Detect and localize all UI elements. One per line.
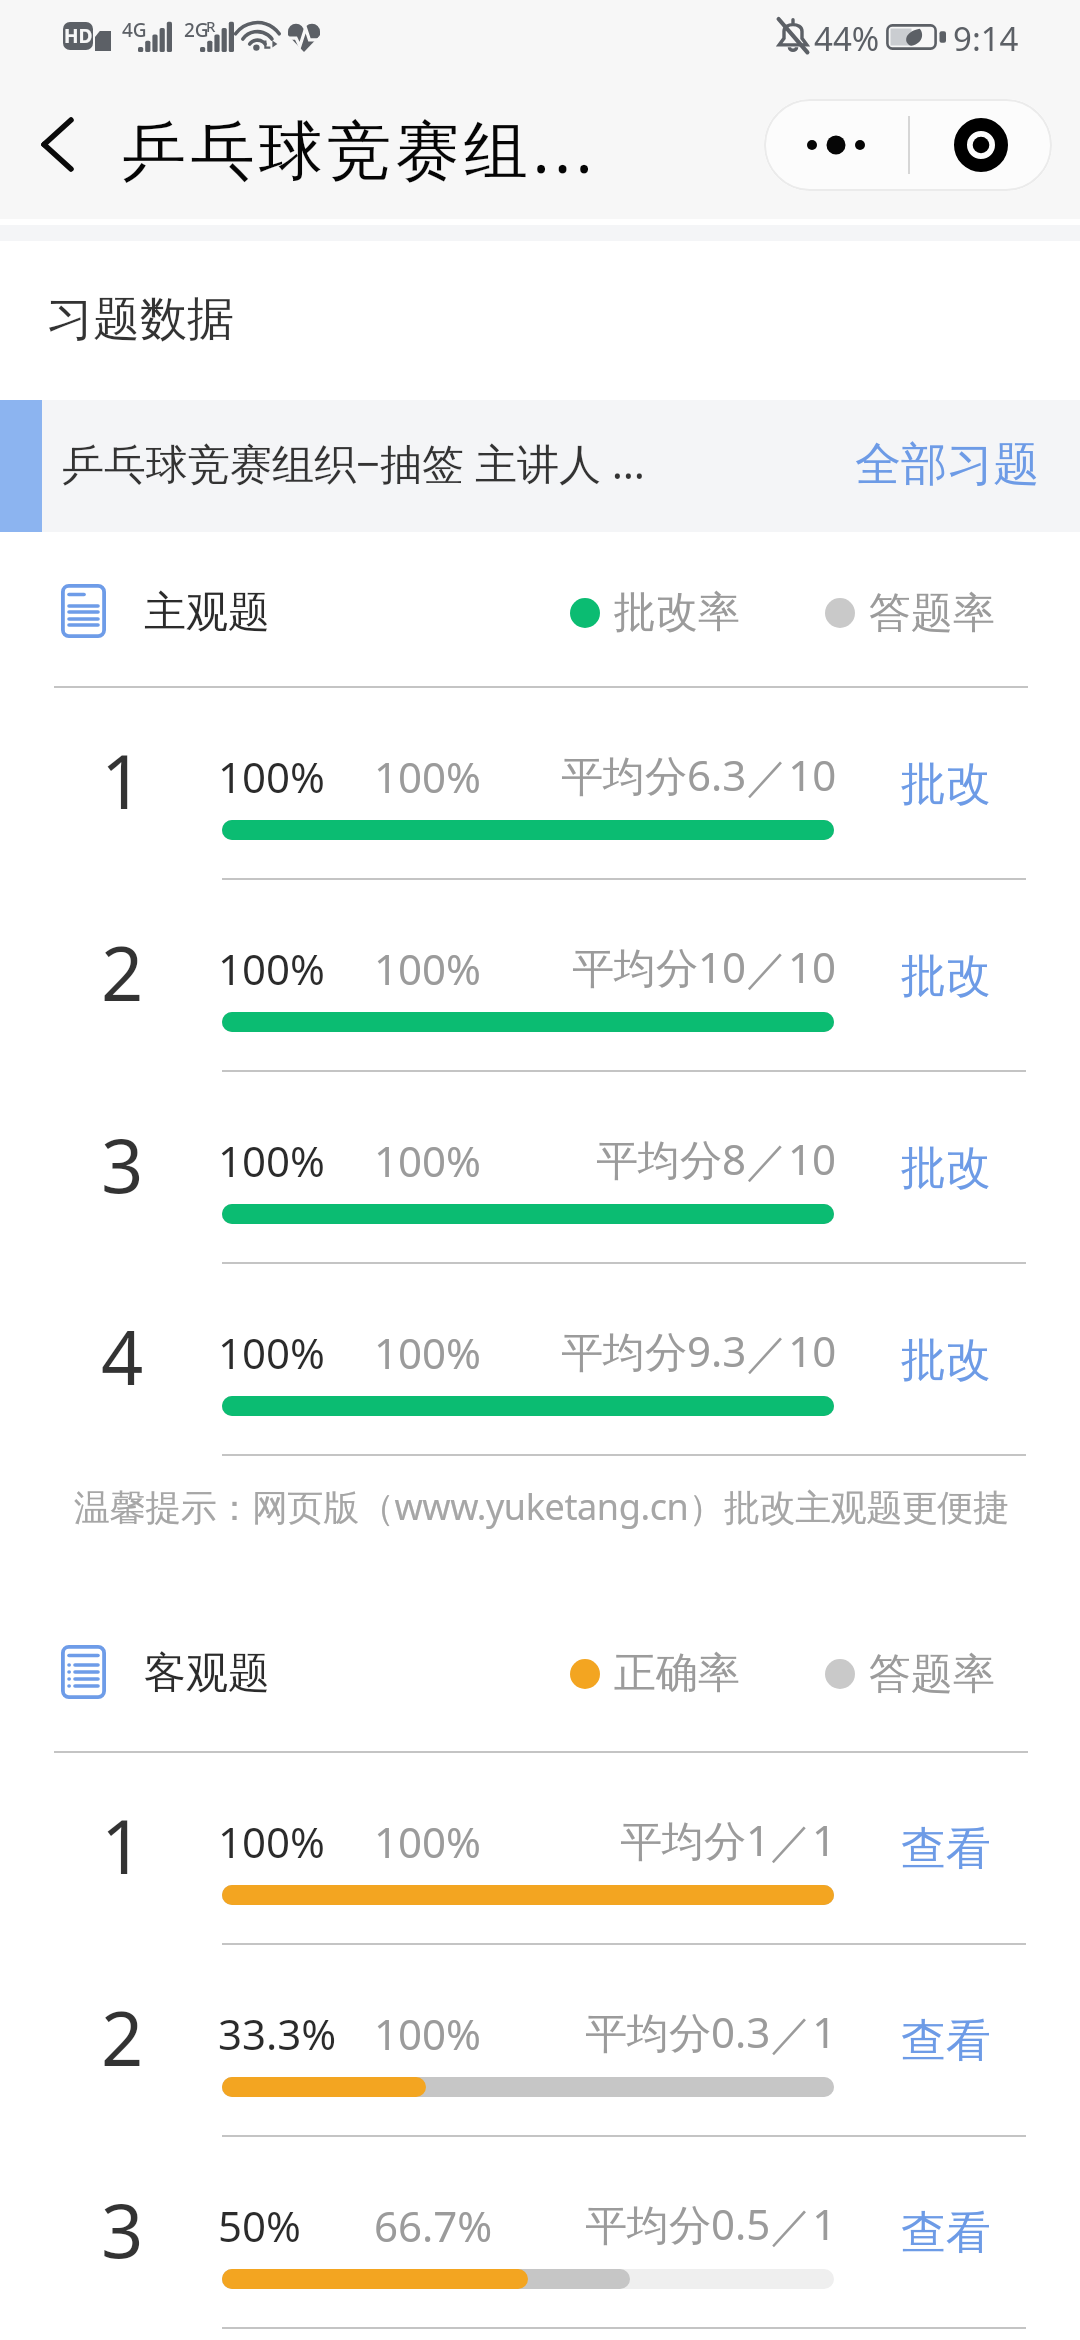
- staticText: 平均分0.3／1: [585, 2003, 837, 2060]
- button[interactable]: [0, 1262, 1080, 1454]
- staticText: 平均分8／10: [596, 1130, 837, 1187]
- button[interactable]: [0, 2135, 1080, 2327]
- staticText: 3: [101, 2179, 144, 2280]
- button[interactable]: Back: [16, 100, 104, 188]
- staticText: 1: [101, 730, 144, 831]
- staticText: 查看: [901, 2205, 991, 2262]
- staticText: 2G: [184, 17, 209, 43]
- staticText: 1: [101, 1795, 144, 1896]
- staticText: 100%: [218, 1324, 325, 1381]
- button[interactable]: [880, 929, 1010, 1019]
- staticText: 33.3%: [218, 2005, 337, 2062]
- staticText: 44%: [814, 16, 880, 61]
- staticText: 4G: [122, 17, 147, 43]
- button[interactable]: [880, 1313, 1010, 1403]
- staticText: 客观题: [144, 1647, 270, 1700]
- staticText: 批改: [901, 1332, 991, 1389]
- staticText: 50%: [218, 2197, 301, 2254]
- button[interactable]: [0, 1070, 1080, 1262]
- staticText: HD: [64, 23, 93, 49]
- staticText: 100%: [374, 1132, 481, 1189]
- staticText: 平均分9.3／10: [561, 1322, 837, 1379]
- button[interactable]: [856, 400, 1034, 532]
- staticText: 100%: [374, 1813, 481, 1870]
- button[interactable]: [0, 400, 1080, 532]
- staticText: 100%: [374, 748, 481, 805]
- staticText: 9:14: [953, 16, 1019, 61]
- button[interactable]: [880, 2186, 1010, 2276]
- staticText: 100%: [218, 1132, 325, 1189]
- button[interactable]: [0, 1751, 1080, 1943]
- button[interactable]: [880, 1802, 1010, 1892]
- staticText: 平均分6.3／10: [561, 746, 837, 803]
- staticText: 查看: [901, 2013, 991, 2070]
- staticText: 100%: [218, 748, 325, 805]
- button[interactable]: Close mini program: [910, 99, 1052, 191]
- staticText: 平均分1／1: [620, 1811, 837, 1868]
- staticText: 2: [101, 1987, 144, 2088]
- staticText: 100%: [374, 2005, 481, 2062]
- staticText: 主观题: [144, 586, 270, 639]
- staticText: 批改: [901, 1140, 991, 1197]
- staticText: 100%: [374, 1324, 481, 1381]
- staticText: 平均分10／10: [572, 938, 837, 995]
- staticText: 乒乓球竞赛组织−抽签 主讲人 …: [62, 434, 646, 491]
- staticText: 100%: [218, 1813, 325, 1870]
- button[interactable]: [880, 1994, 1010, 2084]
- staticText: 100%: [374, 940, 481, 997]
- staticText: 批改: [901, 948, 991, 1005]
- staticText: 温馨提示：网页版（www.yuketang.cn）批改主观题更便捷: [74, 1482, 1009, 1531]
- button[interactable]: [0, 686, 1080, 878]
- staticText: 66.7%: [374, 2197, 493, 2254]
- button[interactable]: More options: [764, 99, 908, 191]
- staticText: 3: [101, 1114, 144, 1215]
- staticText: 答题率: [869, 587, 995, 640]
- staticText: 批改率: [614, 586, 740, 639]
- staticText: 4: [101, 1306, 144, 1407]
- staticText: 批改: [901, 756, 991, 813]
- button[interactable]: [880, 1121, 1010, 1211]
- staticText: 查看: [901, 1821, 991, 1878]
- staticText: R: [206, 16, 216, 36]
- staticText: 全部习题: [855, 436, 1039, 494]
- staticText: 习题数据: [46, 290, 234, 349]
- staticText: 乒乓球竞赛组...: [122, 105, 598, 192]
- staticText: 正确率: [614, 1647, 740, 1700]
- button[interactable]: [0, 1943, 1080, 2135]
- staticText: 平均分0.5／1: [585, 2195, 837, 2252]
- staticText: 答题率: [869, 1648, 995, 1701]
- staticText: 100%: [218, 940, 325, 997]
- staticText: 2: [101, 922, 144, 1023]
- button[interactable]: [880, 737, 1010, 827]
- button[interactable]: [0, 878, 1080, 1070]
